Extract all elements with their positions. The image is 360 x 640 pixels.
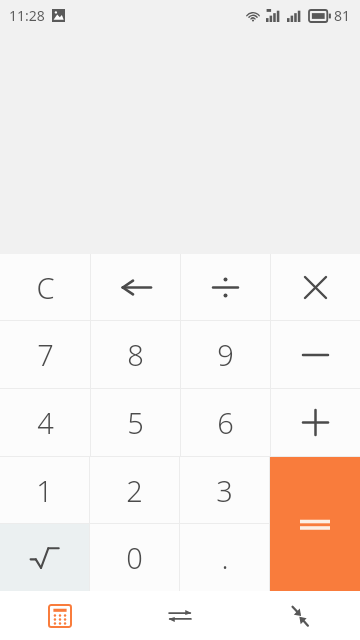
staticText: 8 xyxy=(127,335,144,374)
button[interactable]: 3 xyxy=(180,457,269,523)
button[interactable]: 7 xyxy=(0,321,90,388)
button[interactable]: Divide xyxy=(181,254,270,320)
staticText: 7 xyxy=(37,335,54,374)
staticText: 2 xyxy=(126,471,143,510)
button[interactable]: . xyxy=(180,524,269,591)
button[interactable]: Unit converter xyxy=(158,594,202,638)
button[interactable]: Multiply xyxy=(271,254,360,320)
staticText: 5 xyxy=(127,403,144,442)
button[interactable]: Square root xyxy=(0,524,89,591)
staticText: C xyxy=(36,268,55,307)
button[interactable]: 1 xyxy=(0,457,89,523)
button[interactable]: Collapse xyxy=(278,594,322,638)
button[interactable]: Backspace xyxy=(91,254,180,320)
staticText: 9 xyxy=(217,335,234,374)
button[interactable]: Calculator xyxy=(38,594,82,638)
staticText: 1 xyxy=(36,471,53,510)
button[interactable]: 0 xyxy=(90,524,179,591)
staticText: 3 xyxy=(216,471,233,510)
staticText: 0 xyxy=(126,538,143,577)
staticText: 4 xyxy=(37,403,54,442)
button[interactable]: C xyxy=(0,254,90,320)
button[interactable]: 4 xyxy=(0,389,90,456)
button[interactable]: Plus xyxy=(271,389,360,456)
button[interactable]: 8 xyxy=(91,321,180,388)
button[interactable]: 2 xyxy=(90,457,179,523)
staticText: 81 xyxy=(334,6,351,25)
button[interactable]: 9 xyxy=(181,321,270,388)
staticText: 11:28 xyxy=(9,6,45,25)
staticText: 6 xyxy=(217,403,234,442)
button[interactable]: 5 xyxy=(91,389,180,456)
button[interactable]: Minus xyxy=(271,321,360,388)
button[interactable]: 6 xyxy=(181,389,270,456)
staticText: . xyxy=(221,538,229,577)
button[interactable]: Equals xyxy=(270,457,360,591)
